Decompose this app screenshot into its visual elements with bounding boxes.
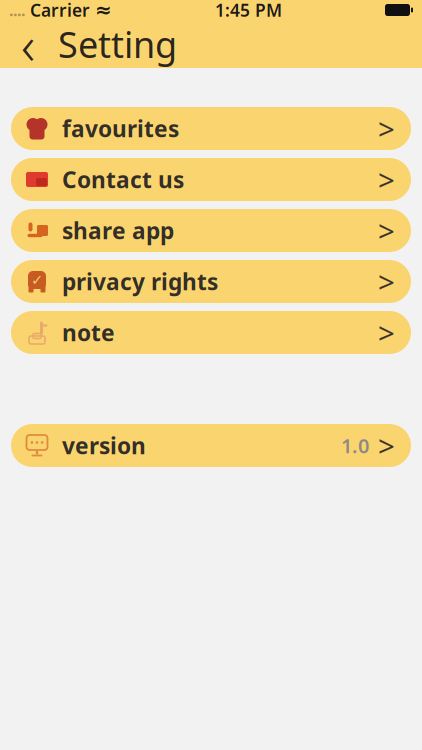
- staticText: version: [62, 430, 146, 460]
- button[interactable]: Back: [8, 21, 48, 67]
- staticText: privacy rights: [62, 266, 218, 296]
- staticText: >: [378, 426, 395, 465]
- staticText: >: [378, 313, 395, 352]
- staticText: share app: [62, 215, 174, 245]
- staticText: >: [378, 160, 395, 199]
- button[interactable]: ✓: [11, 260, 411, 303]
- staticText: ✓: [31, 272, 43, 288]
- button[interactable]: Contact us: [11, 158, 411, 201]
- button[interactable]: version: [11, 424, 411, 467]
- button[interactable]: note: [11, 311, 411, 354]
- staticText: Setting: [58, 20, 177, 68]
- staticText: >: [378, 262, 395, 301]
- staticText: Contact us: [62, 164, 184, 194]
- staticText: ....: [9, 0, 25, 21]
- staticText: favourites: [62, 113, 179, 143]
- staticText: >: [378, 109, 395, 148]
- staticText: >: [378, 211, 395, 250]
- button[interactable]: favourites: [11, 107, 411, 150]
- staticText: ≈: [95, 0, 112, 21]
- button[interactable]: share app: [11, 209, 411, 252]
- staticText: 1:45 PM: [215, 0, 282, 21]
- staticText: ‹: [21, 9, 35, 79]
- staticText: Carrier: [30, 0, 90, 21]
- staticText: 1.0: [341, 432, 369, 459]
- staticText: note: [62, 317, 115, 347]
